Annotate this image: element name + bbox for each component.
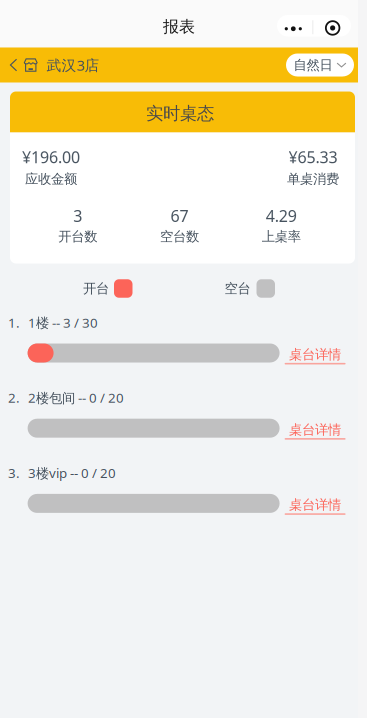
staticText: 应收金额 — [25, 171, 77, 187]
button[interactable]: 桌台详情 — [285, 419, 346, 437]
staticText: 实时桌态 — [146, 103, 214, 124]
button[interactable]: Close mini program — [313, 15, 351, 36]
staticText: 桌台详情 — [289, 421, 341, 438]
button[interactable]: 自然日 — [286, 53, 354, 76]
staticText: 桌台详情 — [289, 346, 341, 363]
staticText: 空台数 — [160, 228, 199, 245]
staticText: 上桌率 — [262, 228, 301, 245]
staticText: 67 — [170, 205, 188, 226]
staticText: 4.29 — [266, 205, 297, 226]
staticText: 2. — [8, 389, 20, 406]
button[interactable]: 桌台详情 — [285, 344, 346, 362]
staticText: 自然日 — [293, 57, 332, 73]
staticText: 空台 — [224, 280, 250, 297]
staticText: 桌台详情 — [289, 497, 341, 513]
staticText: 武汉3店 — [47, 55, 100, 75]
staticText: 2楼包间 -- 0 / 20 — [28, 389, 124, 406]
staticText: 开台数 — [58, 228, 97, 245]
staticText: 单桌消费 — [287, 171, 339, 187]
staticText: 3. — [8, 464, 20, 482]
staticText: ¥65.33 — [288, 146, 337, 168]
staticText: 3 — [73, 205, 82, 226]
staticText: ¥196.00 — [22, 146, 80, 168]
staticText: 开台 — [83, 280, 109, 297]
staticText: 3楼vip -- 0 / 20 — [28, 464, 116, 482]
staticText: 1. — [8, 314, 20, 331]
staticText: 报表 — [163, 17, 195, 37]
staticText: 1楼 -- 3 / 30 — [28, 314, 98, 331]
button[interactable]: More — [277, 15, 312, 36]
button[interactable]: 桌台详情 — [285, 494, 346, 512]
button[interactable]: Back — [3, 47, 23, 82]
